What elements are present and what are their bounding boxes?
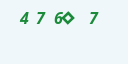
button[interactable]: 4: [0, 0, 128, 64]
staticText: 4: [20, 7, 29, 29]
staticText: 6: [54, 7, 63, 29]
staticText: 7: [89, 7, 98, 29]
staticText: 7: [36, 7, 45, 29]
